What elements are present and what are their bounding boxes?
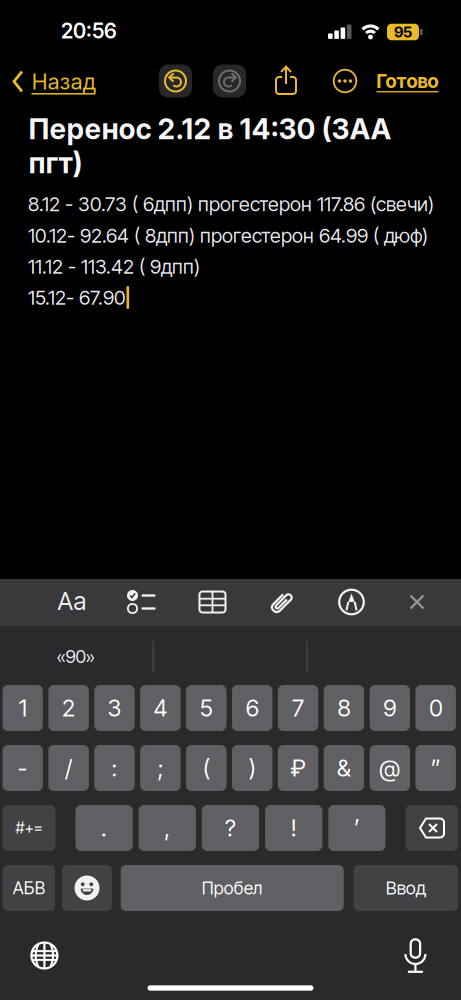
staticText: ,: [164, 814, 170, 842]
staticText: 1: [19, 694, 27, 722]
staticText: ₽: [291, 754, 306, 782]
button[interactable]: 7: [278, 685, 318, 731]
button[interactable]: Чек-лист: [124, 586, 156, 618]
staticText: 7: [292, 694, 304, 722]
button[interactable]: Ещё: [330, 66, 360, 96]
button[interactable]: /: [48, 745, 89, 791]
staticText: Aa: [57, 586, 86, 616]
staticText: 8.12 - 30.73 ( 6дпп) прогестерон 117.86 …: [28, 192, 434, 216]
staticText: (: [203, 754, 210, 782]
button[interactable]: Таблица: [196, 586, 228, 618]
button[interactable]: :: [94, 745, 135, 791]
button[interactable]: ₽: [278, 745, 318, 791]
staticText: 6: [246, 694, 259, 722]
button[interactable]: Удалить: [405, 805, 458, 851]
button[interactable]: ’: [328, 805, 385, 851]
button[interactable]: Назад: [11, 68, 95, 95]
staticText: Пробел: [202, 877, 263, 899]
staticText: 15.12- 67.90: [28, 286, 125, 309]
staticText: Перенос 2.12 в 14:30 (ЗАА: [28, 112, 391, 146]
staticText: 11.12 - 113.42 ( 9дпп): [28, 255, 200, 278]
button[interactable]: «90»: [56, 645, 94, 667]
button[interactable]: 6: [232, 685, 272, 731]
staticText: АБВ: [13, 877, 45, 898]
button[interactable]: Пробел: [121, 865, 344, 911]
button[interactable]: 0: [415, 685, 456, 731]
staticText: 9: [383, 694, 396, 722]
button[interactable]: !: [265, 805, 322, 851]
button[interactable]: Диктовка: [395, 933, 435, 977]
staticText: пгт): [28, 146, 82, 180]
button[interactable]: @: [370, 745, 410, 791]
staticText: ’: [354, 814, 360, 842]
button[interactable]: ?: [202, 805, 259, 851]
staticText: ;: [157, 754, 163, 782]
button[interactable]: Разметка: [335, 586, 367, 618]
button[interactable]: ;: [140, 745, 181, 791]
button[interactable]: #+=: [2, 805, 55, 851]
staticText: :: [111, 754, 117, 782]
staticText: Ввод: [386, 877, 426, 899]
button[interactable]: 2: [48, 685, 89, 731]
staticText: 8: [337, 694, 350, 722]
button[interactable]: (: [186, 745, 226, 791]
staticText: «90»: [56, 645, 94, 667]
staticText: /: [65, 754, 72, 782]
staticText: 5: [200, 694, 213, 722]
button[interactable]: Готово: [376, 69, 438, 93]
button[interactable]: ,: [139, 805, 196, 851]
staticText: 4: [153, 694, 167, 722]
staticText: 20:56: [61, 18, 117, 44]
button[interactable]: Эмодзи: [62, 865, 112, 911]
button[interactable]: 3: [94, 685, 135, 731]
button[interactable]: Закрыть: [402, 587, 432, 617]
staticText: Готово: [376, 69, 438, 93]
staticText: #+=: [15, 819, 42, 837]
staticText: 2: [62, 694, 75, 722]
button[interactable]: Формат: [57, 586, 86, 616]
button[interactable]: Отменить: [159, 64, 192, 97]
button[interactable]: АБВ: [2, 865, 55, 911]
staticText: .: [101, 814, 107, 842]
button[interactable]: 5: [186, 685, 226, 731]
button[interactable]: Повторить: [213, 64, 246, 97]
button[interactable]: ”: [415, 745, 456, 791]
staticText: &: [337, 754, 351, 782]
staticText: ”: [431, 754, 441, 782]
staticText: 95: [394, 23, 412, 41]
staticText: !: [291, 814, 297, 842]
button[interactable]: &: [324, 745, 364, 791]
button[interactable]: ): [232, 745, 272, 791]
staticText: @: [379, 754, 400, 782]
button[interactable]: 8: [324, 685, 364, 731]
button[interactable]: 9: [370, 685, 410, 731]
button[interactable]: 4: [140, 685, 181, 731]
staticText: 0: [429, 694, 442, 722]
button[interactable]: -: [2, 745, 43, 791]
staticText: ?: [225, 814, 236, 842]
button[interactable]: Поделиться: [269, 62, 303, 96]
staticText: -: [18, 754, 28, 782]
staticText: 3: [107, 694, 121, 722]
button[interactable]: Сменить клавиатуру: [24, 935, 64, 975]
button[interactable]: Вложение: [266, 586, 298, 618]
button[interactable]: Ввод: [353, 865, 458, 911]
staticText: Назад: [31, 68, 95, 95]
staticText: ): [249, 754, 256, 782]
button[interactable]: 1: [2, 685, 43, 731]
staticText: 10.12- 92.64 ( 8дпп) прогестерон 64.99 (…: [28, 224, 428, 247]
button[interactable]: .: [75, 805, 133, 851]
